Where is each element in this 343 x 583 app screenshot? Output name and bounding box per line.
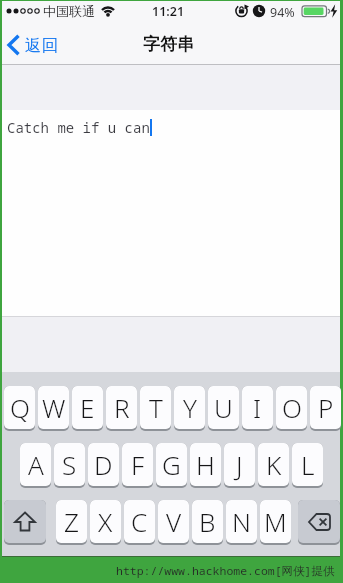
staticText: U — [214, 390, 233, 425]
staticText: Catch me if u can — [7, 118, 150, 137]
staticText: E — [80, 390, 95, 425]
button[interactable] — [298, 500, 340, 543]
staticText: R — [114, 390, 130, 425]
staticText: V — [166, 504, 182, 539]
staticText: 11:21 — [152, 3, 185, 20]
staticText: O — [282, 390, 302, 425]
button[interactable]: 返回 — [6, 34, 58, 56]
button[interactable]: Y — [174, 386, 205, 429]
staticText: G — [162, 447, 181, 482]
button[interactable]: X — [90, 500, 121, 543]
button[interactable]: V — [158, 500, 189, 543]
button[interactable]: P — [310, 386, 341, 429]
button[interactable]: R — [106, 386, 137, 429]
button[interactable]: S — [54, 443, 85, 486]
staticText: Q — [10, 390, 30, 425]
staticText: X — [98, 504, 113, 539]
staticText: W — [42, 390, 66, 425]
button[interactable]: G — [156, 443, 187, 486]
button[interactable]: Catch me if u can — [2, 110, 340, 316]
button[interactable]: M — [260, 500, 291, 543]
button[interactable]: B — [192, 500, 223, 543]
staticText: H — [196, 447, 215, 482]
button[interactable]: J — [224, 443, 255, 486]
staticText: N — [232, 504, 251, 539]
button[interactable]: Z — [56, 500, 87, 543]
staticText: I — [253, 390, 262, 425]
button[interactable]: W — [38, 386, 69, 429]
staticText: P — [318, 390, 334, 425]
button[interactable]: I — [242, 386, 273, 429]
staticText: 返回 — [25, 35, 58, 56]
staticText: C — [131, 504, 148, 539]
button[interactable]: O — [276, 386, 307, 429]
staticText: A — [28, 447, 44, 482]
staticText: T — [149, 390, 163, 425]
button[interactable]: E — [72, 386, 103, 429]
staticText: 94% — [270, 4, 295, 21]
button[interactable]: F — [122, 443, 153, 486]
button[interactable] — [4, 500, 46, 543]
staticText: F — [131, 447, 145, 482]
button[interactable]: U — [208, 386, 239, 429]
staticText: M — [264, 504, 287, 539]
staticText: J — [236, 447, 243, 482]
button[interactable]: H — [190, 443, 221, 486]
button[interactable]: K — [258, 443, 289, 486]
staticText: S — [62, 447, 77, 482]
staticText: http://www.hackhome.com[网侠]提供 — [116, 563, 335, 579]
button[interactable]: T — [140, 386, 171, 429]
button[interactable]: A — [20, 443, 51, 486]
button[interactable]: L — [292, 443, 323, 486]
staticText: Z — [64, 504, 79, 539]
staticText: L — [301, 447, 315, 482]
button[interactable]: C — [124, 500, 155, 543]
staticText: 字符串 — [143, 34, 194, 55]
staticText: 中国联通 — [43, 3, 95, 19]
staticText: Y — [183, 390, 197, 425]
staticText: B — [199, 504, 216, 539]
button[interactable]: Q — [4, 386, 35, 429]
staticText: D — [94, 447, 113, 482]
button[interactable]: N — [226, 500, 257, 543]
button[interactable]: D — [88, 443, 119, 486]
staticText: K — [266, 447, 282, 482]
